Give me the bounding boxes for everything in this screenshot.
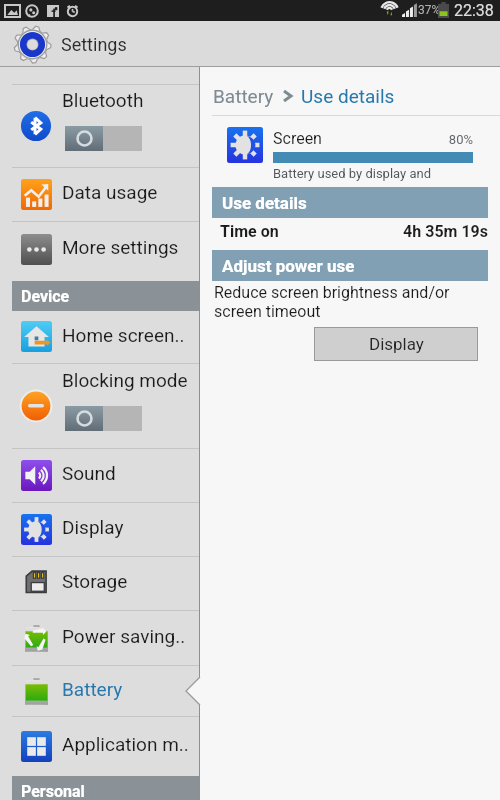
- staticText: 80%: [273, 132, 473, 147]
- staticText: Home screen..: [62, 324, 185, 346]
- button[interactable]: Data usage: [0, 167, 200, 221]
- staticText: Display: [369, 334, 424, 354]
- button[interactable]: Sound: [0, 448, 200, 502]
- staticText: Storage: [62, 570, 128, 592]
- staticText: Data usage: [62, 181, 158, 203]
- button[interactable]: Power saving..: [0, 610, 200, 665]
- button[interactable]: Application m..: [0, 716, 200, 776]
- staticText: 22:38: [454, 1, 494, 20]
- button[interactable]: Adjust power use: [212, 250, 488, 281]
- button[interactable]: Storage: [0, 556, 200, 610]
- button[interactable]: Display: [0, 502, 200, 556]
- staticText: 4h 35m 19s: [220, 222, 488, 241]
- button[interactable]: Display: [315, 328, 477, 360]
- staticText: 37%: [418, 3, 441, 17]
- staticText: Adjust power use: [222, 256, 355, 276]
- button[interactable]: Bluetooth: [0, 84, 200, 167]
- staticText: Application m..: [62, 733, 189, 755]
- button[interactable]: Battery: [0, 665, 200, 716]
- staticText: Battery: [62, 678, 123, 700]
- staticText: Display: [62, 516, 124, 538]
- button[interactable]: Battery: [213, 85, 274, 107]
- button[interactable]: Bluetooth toggle: [65, 126, 142, 151]
- staticText: Time on: [220, 222, 279, 241]
- button[interactable]: Use details: [301, 85, 395, 107]
- staticText: Power saving..: [62, 625, 186, 647]
- staticText: Sound: [62, 462, 116, 484]
- staticText: Settings: [61, 34, 127, 55]
- staticText: Reduce screen brightness and/or screen t…: [214, 283, 450, 321]
- staticText: More settings: [62, 236, 179, 258]
- button[interactable]: Blocking mode toggle: [65, 406, 142, 431]
- staticText: Personal: [21, 782, 85, 800]
- staticText: Bluetooth: [62, 89, 144, 111]
- staticText: Screen: [273, 129, 322, 148]
- button[interactable]: Settings: [0, 21, 500, 67]
- button[interactable]: More settings: [0, 221, 200, 277]
- button[interactable]: Home screen..: [0, 310, 200, 363]
- button[interactable]: Blocking mode: [0, 363, 200, 448]
- staticText: Device: [21, 287, 70, 306]
- staticText: Blocking mode: [62, 369, 188, 391]
- staticText: Battery used by display and: [273, 166, 431, 181]
- button[interactable]: Use details: [212, 187, 488, 218]
- staticText: Use details: [222, 193, 307, 213]
